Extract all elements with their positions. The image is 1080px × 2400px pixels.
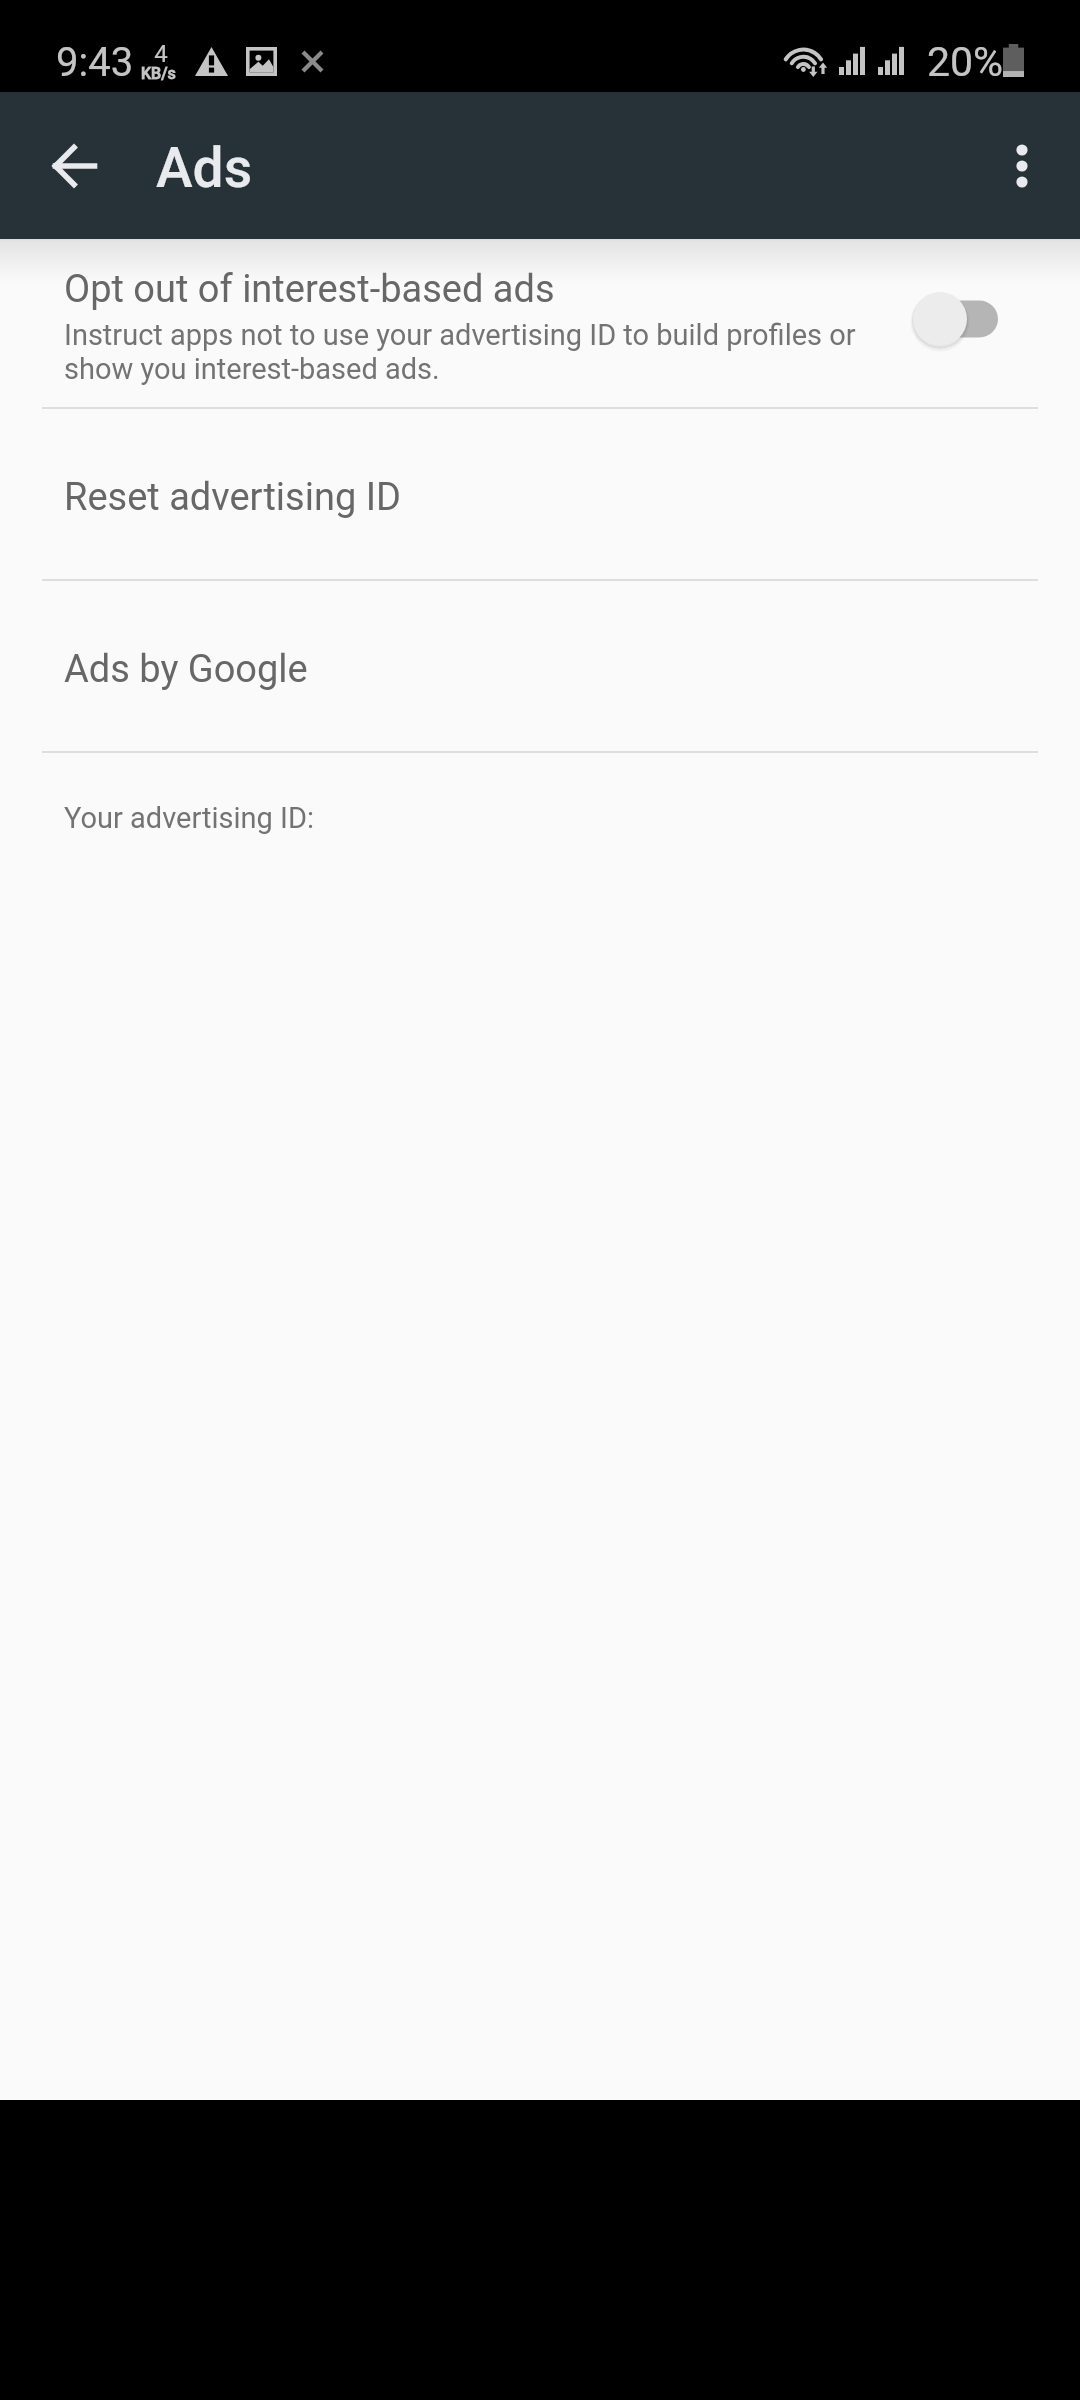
- staticText: Instruct apps not to use your advertisin…: [64, 318, 884, 386]
- button[interactable]: Reset advertising ID: [0, 409, 1080, 579]
- button[interactable]: Navigate up: [26, 118, 122, 214]
- staticText: 9:43: [56, 39, 134, 86]
- staticText: KB/s: [141, 64, 176, 83]
- staticText: Ads: [156, 136, 253, 200]
- staticText: Your advertising ID:: [64, 801, 314, 835]
- staticText: Reset advertising ID: [64, 475, 401, 520]
- button[interactable]: More options: [974, 118, 1070, 214]
- staticText: 4: [154, 40, 168, 68]
- button[interactable]: Ads by Google: [0, 581, 1080, 751]
- button[interactable]: Opt out of interest-based ads: [0, 239, 1080, 407]
- staticText: Ads by Google: [64, 647, 308, 692]
- button[interactable]: Opt out of interest-based ads toggle: [878, 271, 1014, 367]
- staticText: 20%: [927, 38, 1004, 86]
- staticText: Opt out of interest-based ads: [64, 267, 555, 312]
